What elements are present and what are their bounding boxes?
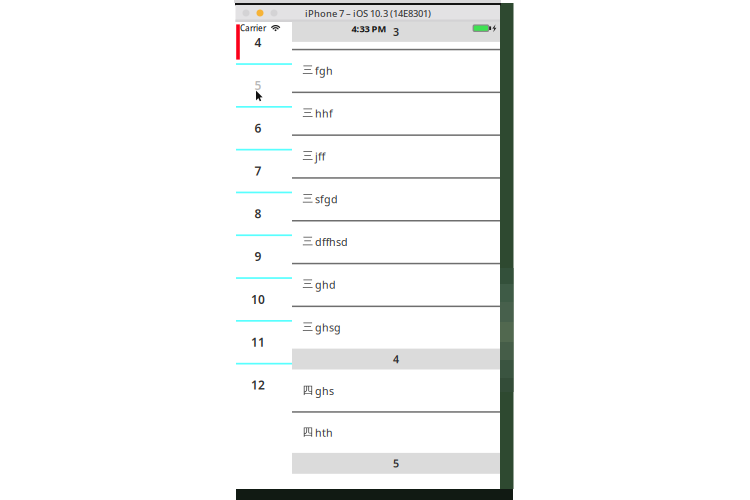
- staticText: hth: [315, 425, 333, 440]
- staticText: hhf: [315, 106, 333, 121]
- staticText: ghs: [315, 384, 334, 398]
- staticText: 6: [254, 120, 261, 136]
- button[interactable]: 三: [292, 220, 500, 263]
- staticText: 四: [302, 425, 313, 438]
- button[interactable]: 三: [292, 134, 500, 177]
- staticText: 三: [302, 235, 313, 248]
- staticText: ghsg: [315, 320, 341, 335]
- staticText: 三: [302, 320, 313, 333]
- staticText: 4: [393, 352, 399, 366]
- staticText: fgh: [315, 64, 333, 78]
- staticText: dffhsd: [315, 235, 348, 249]
- button[interactable]: 四: [292, 411, 500, 453]
- button[interactable]: 三: [292, 49, 500, 92]
- staticText: ghd: [315, 278, 336, 292]
- staticText: 10: [251, 291, 265, 307]
- staticText: iPhone 7 – iOS 10.3 (14E8301): [305, 7, 431, 19]
- staticText: 7: [254, 163, 261, 179]
- button[interactable]: 四: [292, 369, 500, 411]
- staticText: 12: [251, 377, 265, 393]
- staticText: 4: [254, 34, 261, 50]
- button[interactable]: 三: [292, 306, 500, 348]
- staticText: 5: [393, 456, 399, 470]
- staticText: 9: [254, 248, 261, 264]
- button[interactable]: 三: [292, 92, 500, 134]
- staticText: 四: [302, 384, 313, 397]
- button[interactable]: 三: [292, 177, 500, 220]
- staticText: 5: [254, 77, 261, 93]
- staticText: jff: [315, 149, 325, 163]
- staticText: 8: [254, 206, 261, 222]
- staticText: 三: [302, 277, 313, 291]
- staticText: Carrier: [240, 23, 266, 33]
- staticText: 11: [251, 334, 265, 350]
- staticText: 三: [302, 106, 313, 119]
- button[interactable]: 三: [292, 263, 500, 306]
- staticText: 三: [302, 192, 313, 205]
- staticText: sfgd: [315, 192, 338, 206]
- staticText: 三: [302, 63, 313, 77]
- staticText: 4:33 PM: [351, 22, 386, 35]
- staticText: 三: [302, 149, 313, 162]
- staticText: 3: [393, 25, 399, 39]
